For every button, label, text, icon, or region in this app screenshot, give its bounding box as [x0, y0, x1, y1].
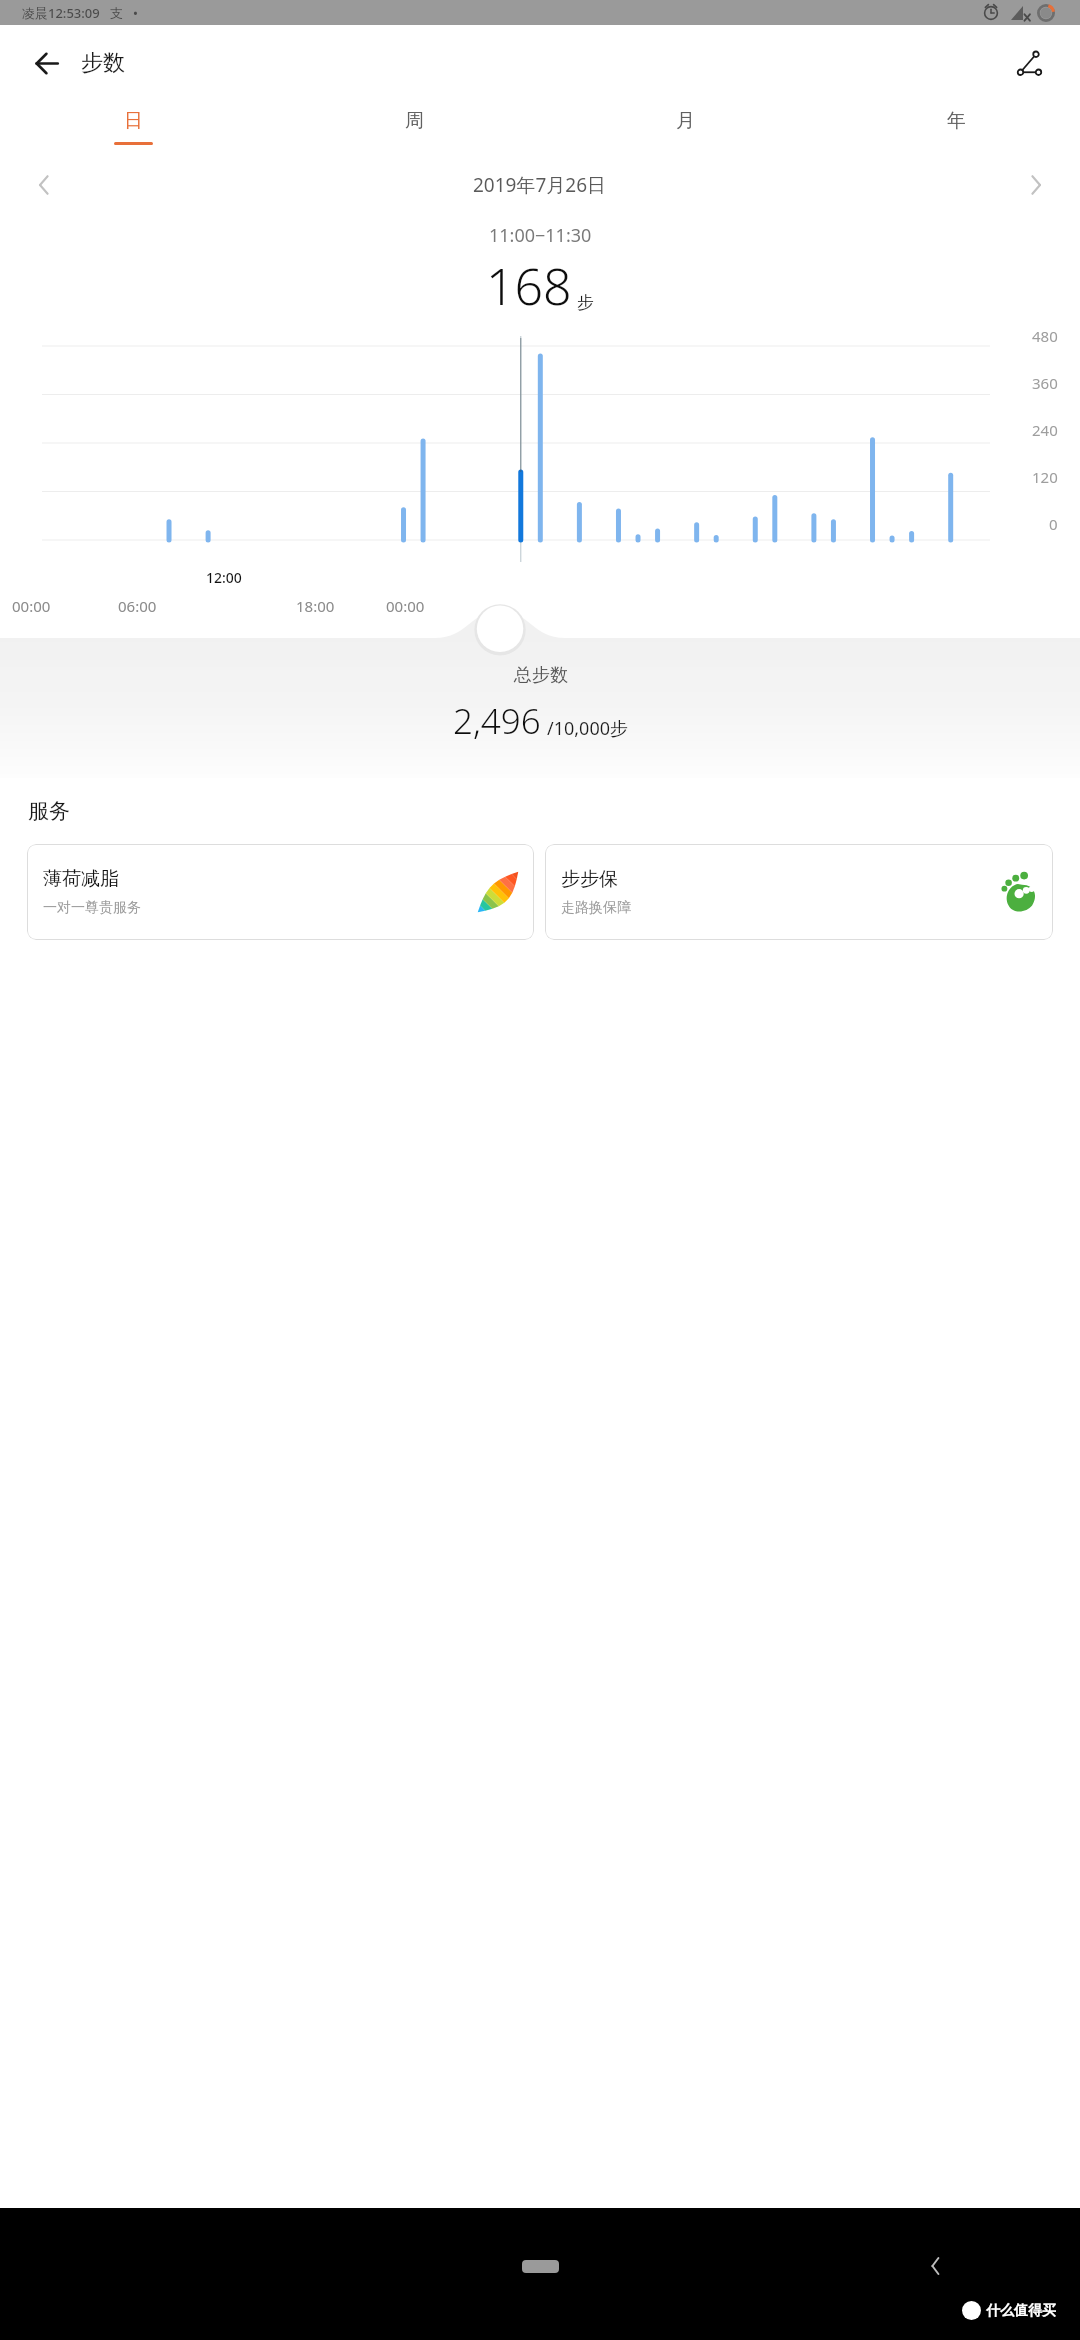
staticText: 周	[405, 109, 424, 133]
staticText: 什么值得买	[986, 2302, 1056, 2320]
staticText: 步数	[81, 49, 125, 77]
staticText: 120	[1032, 467, 1058, 487]
staticText: 走路换保障	[561, 899, 631, 917]
button[interactable]: Previous day	[22, 163, 66, 207]
staticText: 日	[124, 109, 143, 133]
button[interactable]: Share	[1007, 41, 1052, 86]
button[interactable]: 周	[389, 101, 440, 153]
staticText: 年	[947, 109, 966, 133]
staticText: 凌晨12:53:09 支 •	[22, 4, 138, 22]
button[interactable]: 步步保	[545, 844, 1053, 940]
staticText: 18:00	[296, 596, 335, 616]
staticText: 00:00	[12, 596, 51, 616]
button[interactable]: 日	[98, 101, 169, 153]
staticText: 480	[1032, 326, 1058, 346]
staticText: 薄荷减脂	[43, 867, 119, 891]
staticText: 360	[1032, 373, 1058, 393]
other: Back	[34, 50, 61, 77]
button[interactable]: Back	[916, 2246, 956, 2286]
staticText: 240	[1032, 420, 1058, 440]
staticText: 步步保	[561, 867, 618, 891]
button[interactable]: Home	[522, 2260, 559, 2273]
staticText: 06:00	[118, 596, 157, 616]
staticText: 12:00	[206, 568, 242, 587]
staticText: 一对一尊贵服务	[43, 899, 141, 917]
staticText: 2,496	[453, 697, 541, 745]
staticText: 00:00	[386, 596, 425, 616]
staticText: 服务	[28, 798, 70, 824]
staticText: /10,000步	[547, 716, 628, 741]
staticText: 步	[577, 292, 594, 313]
staticText: 168	[486, 252, 572, 320]
staticText: 11:00−11:30	[489, 223, 592, 248]
staticText: 0	[1049, 514, 1058, 534]
staticText: 2019年7月26日	[473, 172, 607, 198]
button[interactable]: 薄荷减脂	[27, 844, 534, 940]
staticText: 总步数	[514, 664, 568, 687]
button[interactable]: 月	[660, 101, 711, 153]
button[interactable]: Back	[26, 41, 133, 85]
button[interactable]: 年	[931, 101, 982, 153]
staticText: 月	[676, 109, 695, 133]
button[interactable]: Next day	[1014, 163, 1058, 207]
